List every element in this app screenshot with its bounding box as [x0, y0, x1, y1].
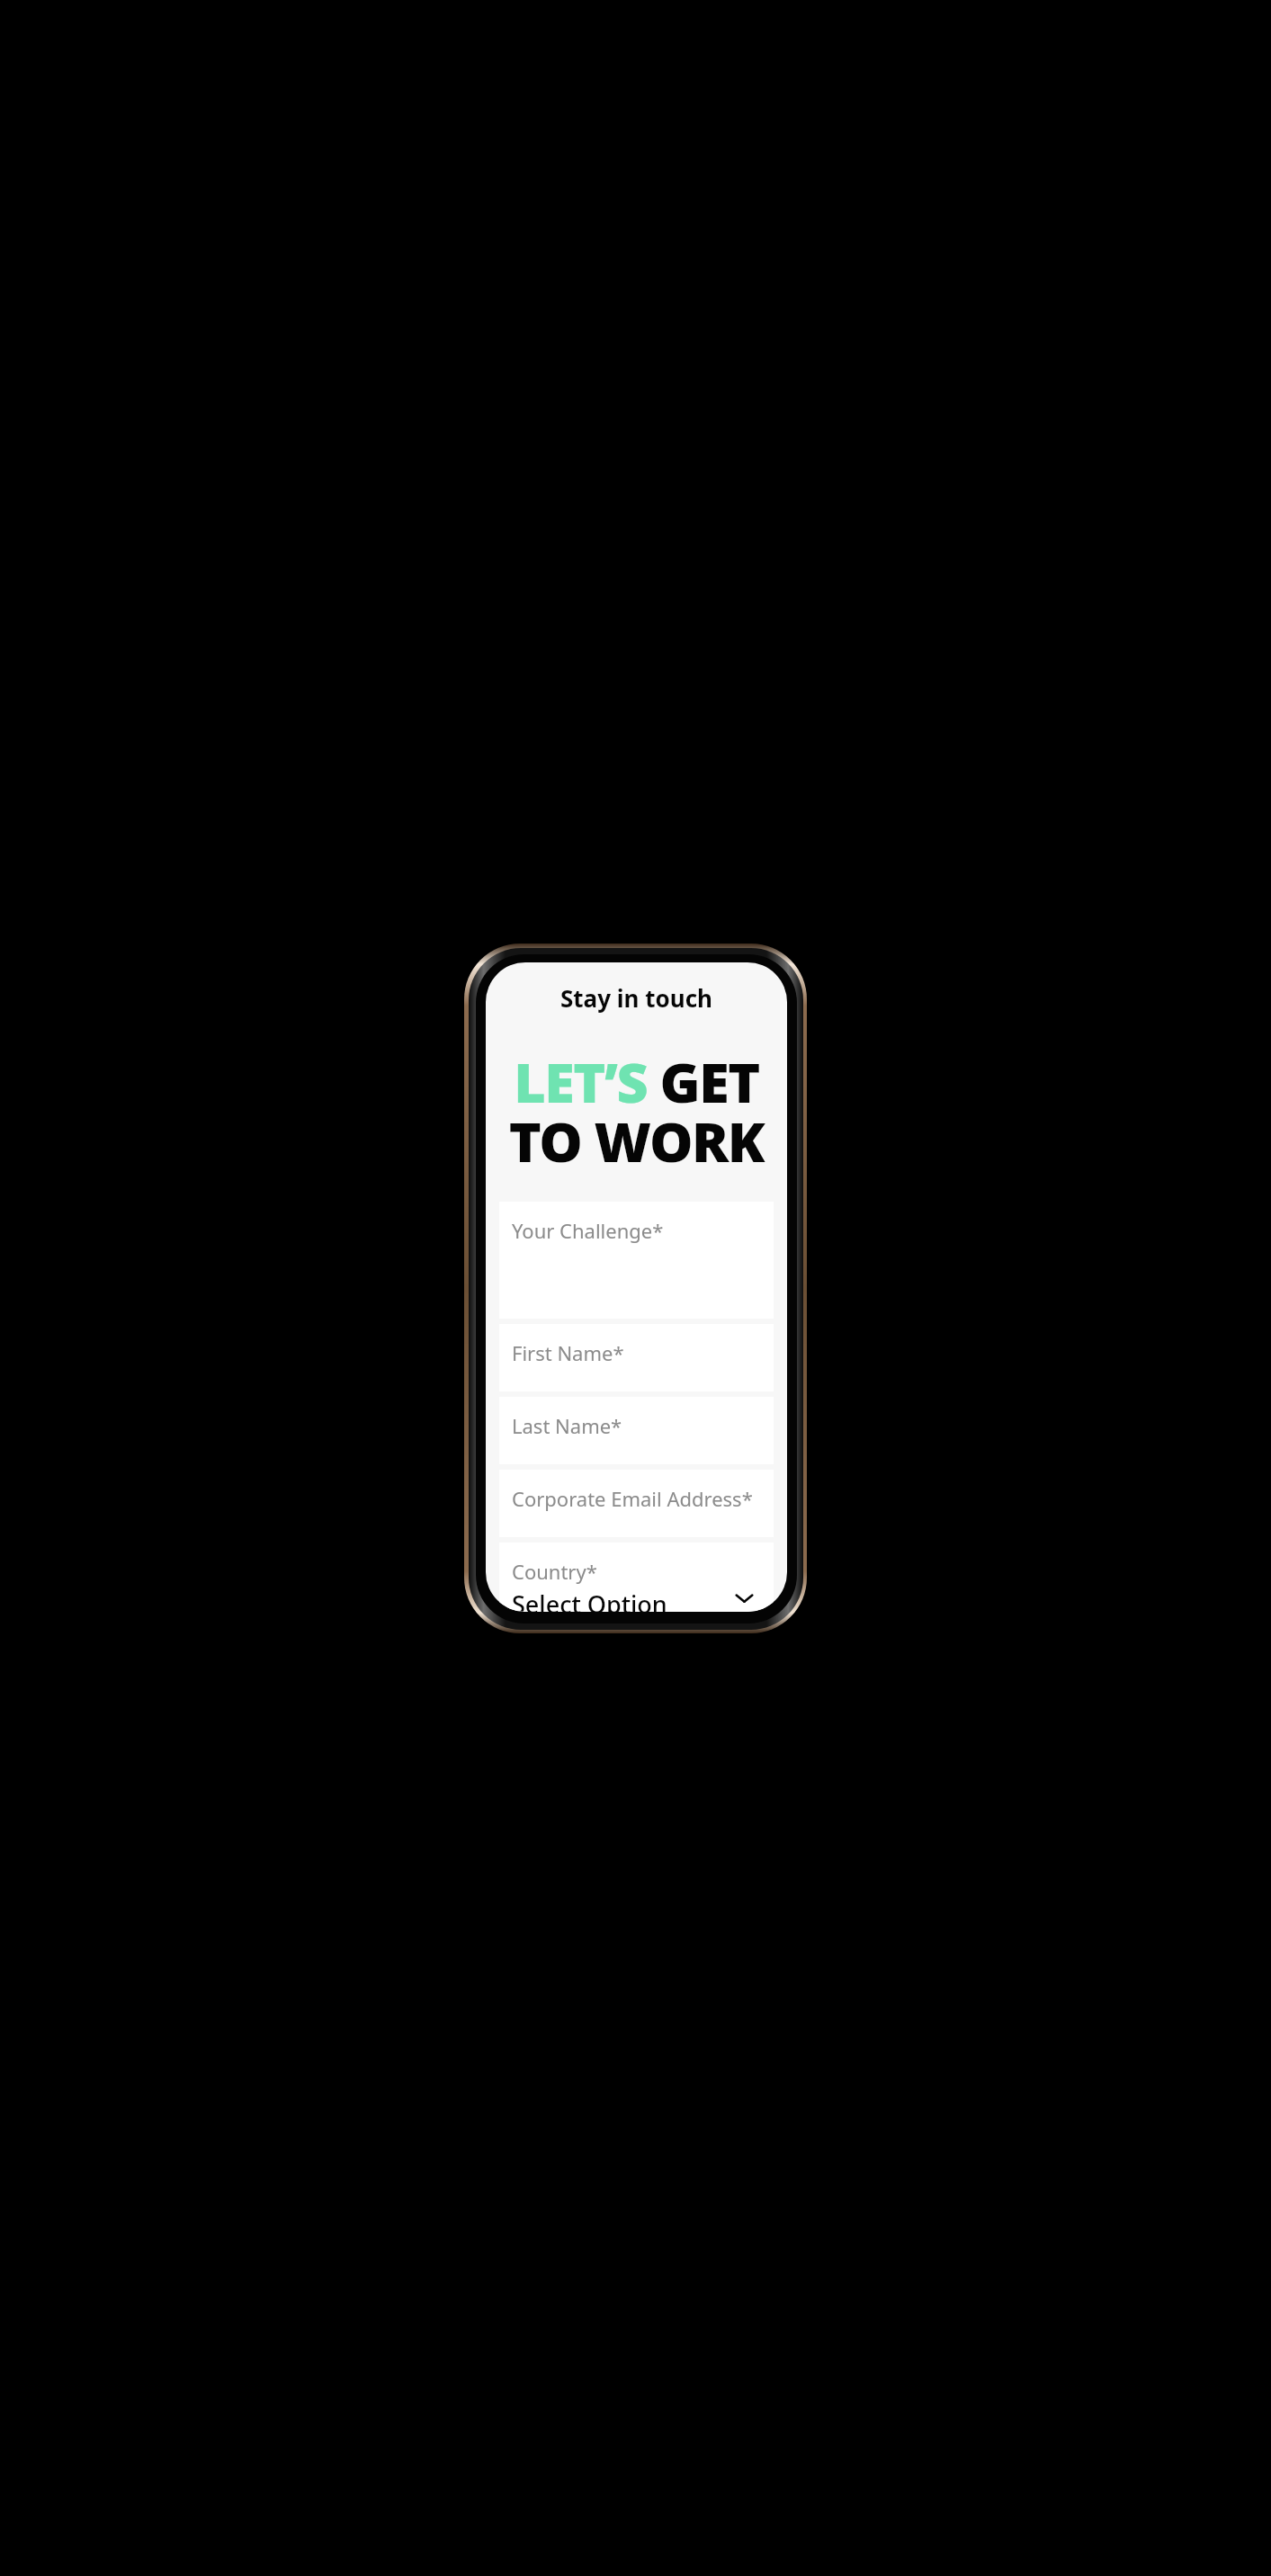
button[interactable]: Stay in touch — [486, 982, 787, 1014]
button[interactable]: Your Challenge* — [499, 1202, 774, 1319]
button[interactable]: Open country list — [727, 1580, 761, 1612]
staticText: Corporate Email Address* — [512, 1485, 753, 1512]
staticText: Country* — [512, 1558, 597, 1585]
staticText: Last Name* — [512, 1412, 622, 1439]
staticText: Select Option — [512, 1588, 667, 1612]
staticText: Your Challenge* — [512, 1217, 664, 1244]
button[interactable]: Corporate Email Address* — [499, 1470, 774, 1537]
button[interactable]: Last Name* — [499, 1397, 774, 1464]
staticText: First Name* — [512, 1339, 624, 1366]
button[interactable]: First Name* — [499, 1324, 774, 1391]
staticText: Stay in touch — [560, 982, 712, 1014]
button[interactable]: Country* — [499, 1543, 774, 1612]
staticText: LET’S GET TO WORK — [500, 1044, 773, 1178]
